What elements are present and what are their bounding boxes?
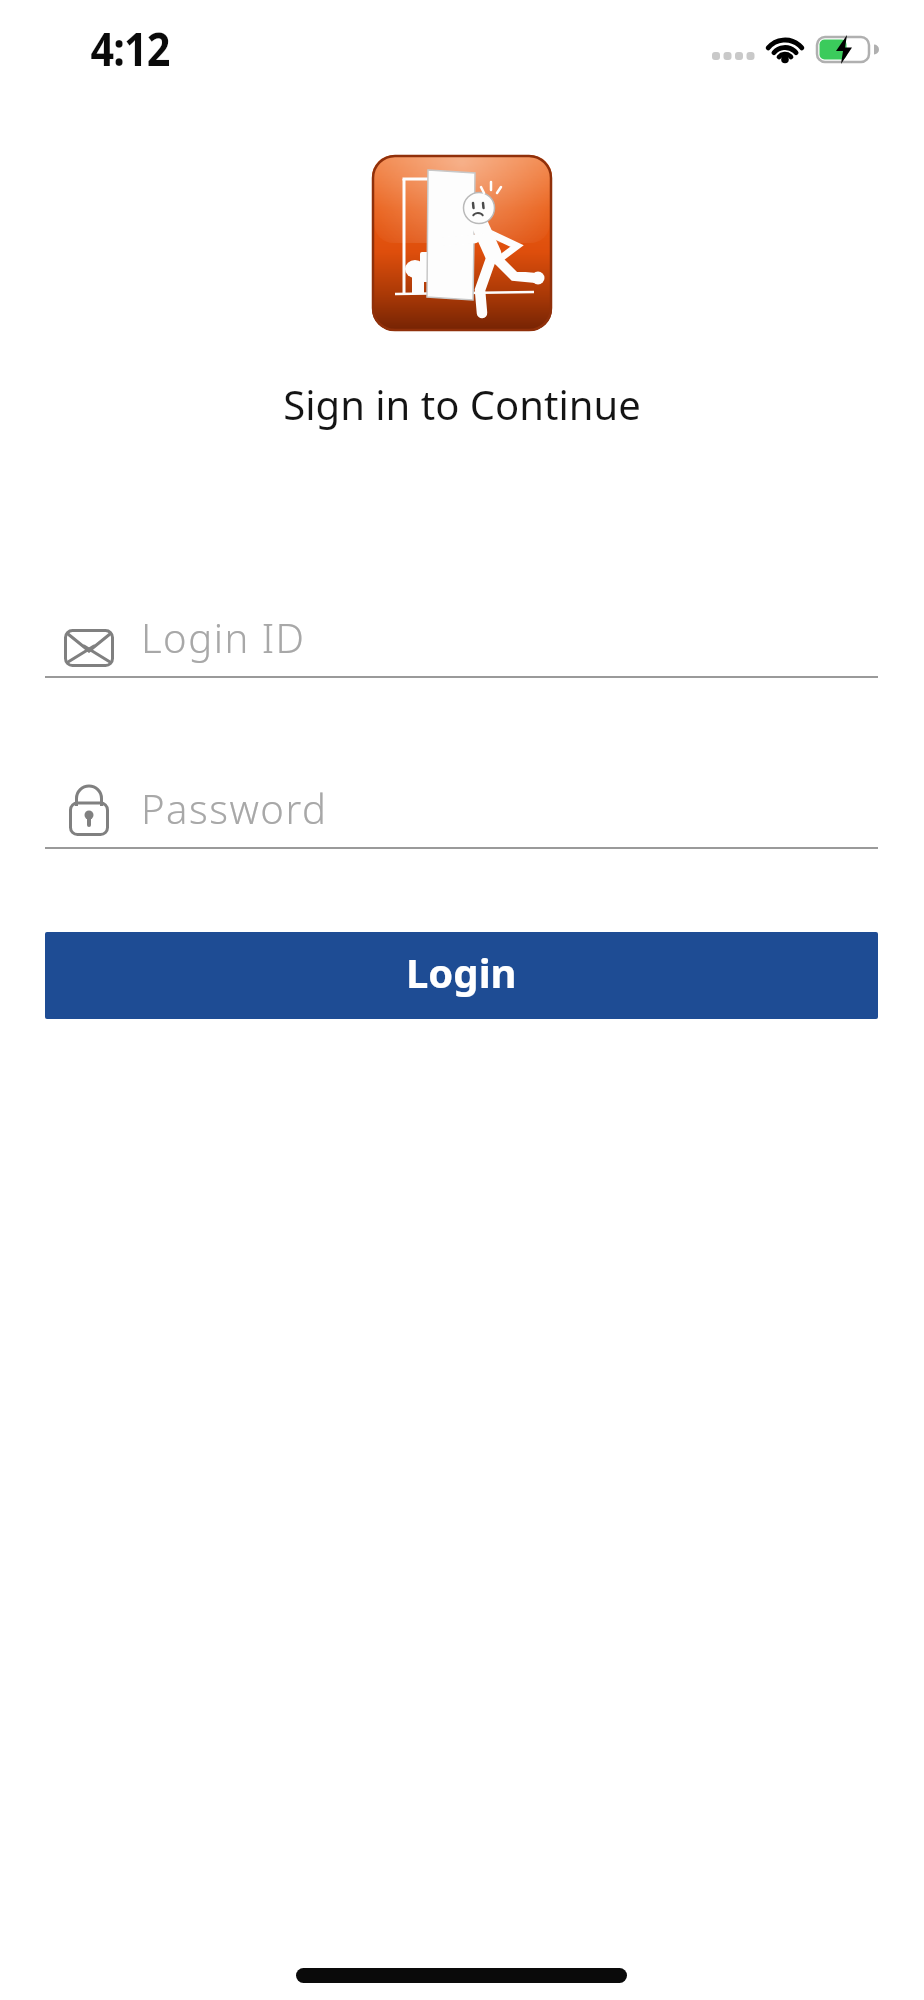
button[interactable]: Login	[45, 932, 878, 1019]
staticText: 4:12	[90, 16, 170, 80]
staticText: Sign in to Continue	[0, 377, 924, 431]
button[interactable]	[372, 155, 552, 331]
button[interactable]: Login ID	[45, 600, 878, 678]
staticText: Login	[406, 945, 517, 999]
staticText: Login ID	[141, 610, 306, 664]
staticText: Password	[141, 781, 328, 835]
button[interactable]: Password	[45, 771, 878, 849]
